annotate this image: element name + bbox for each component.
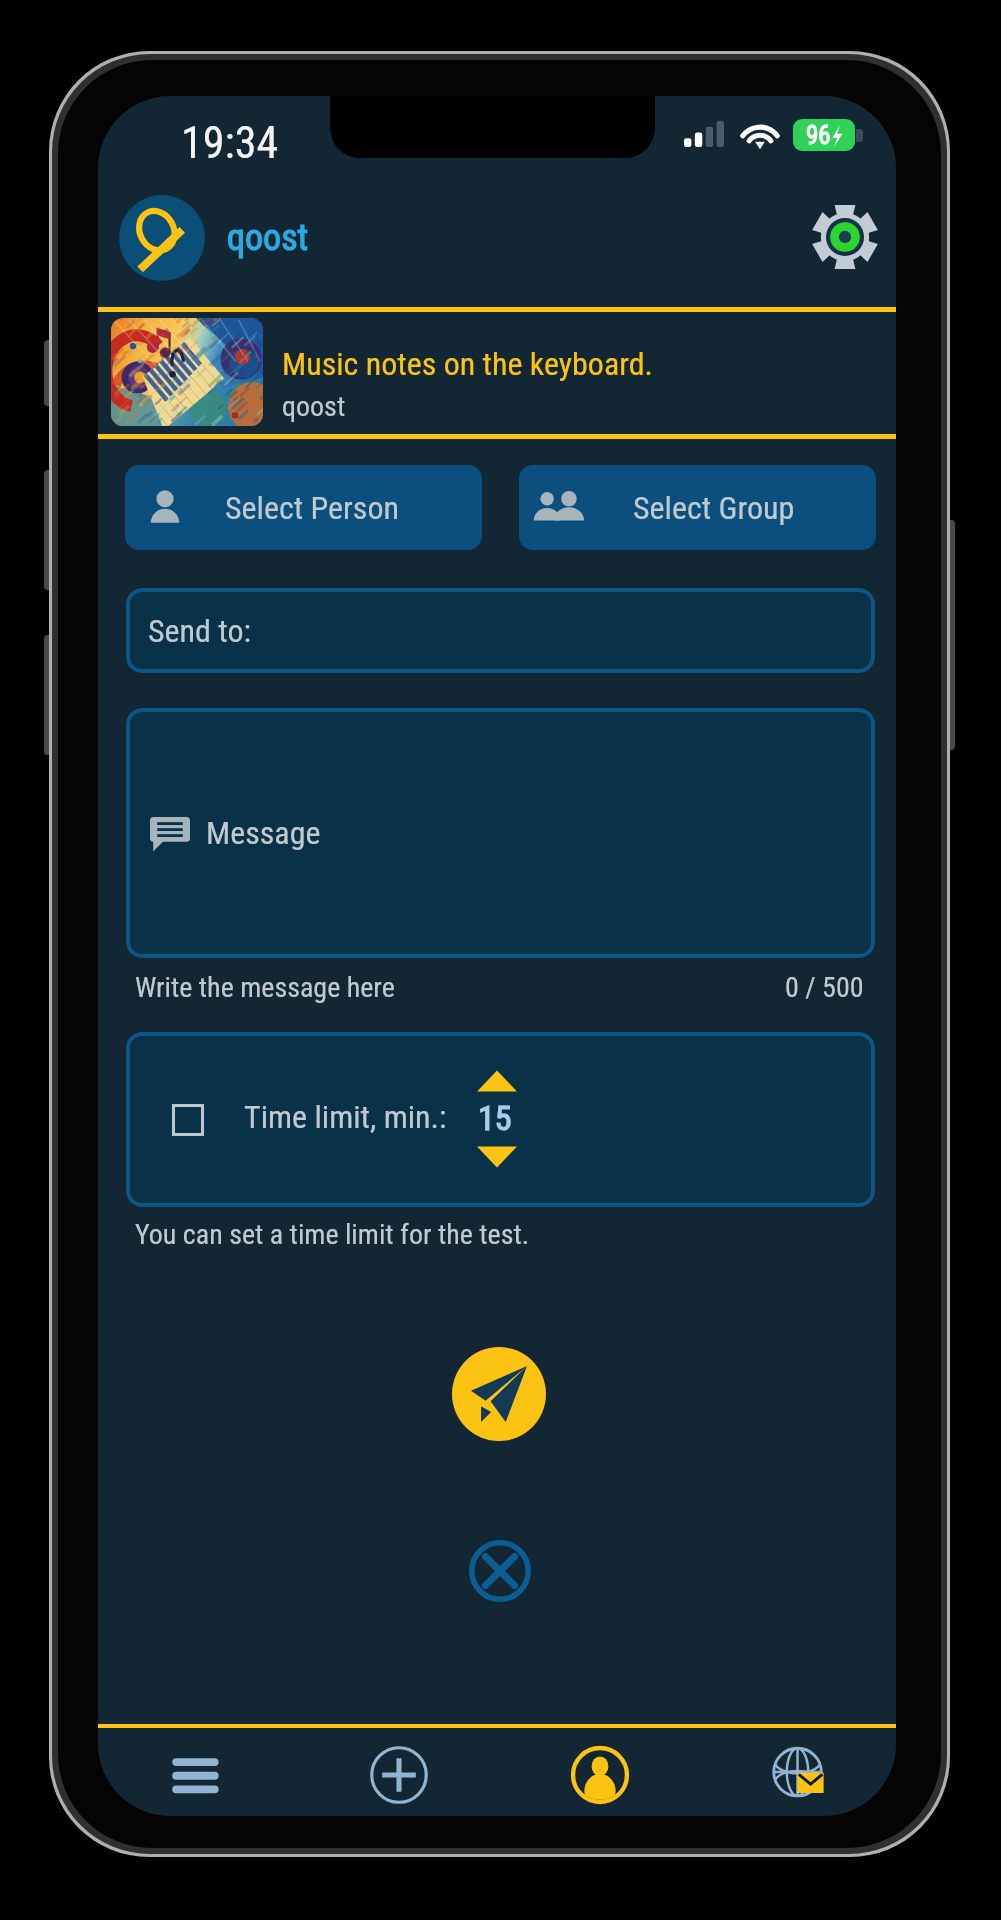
staticText: Write the message here	[135, 971, 395, 1004]
button[interactable]: Menu	[151, 1734, 241, 1816]
button[interactable]: Send to:	[126, 588, 875, 673]
staticText: 0 / 500	[785, 971, 864, 1004]
button[interactable]: Add	[354, 1734, 444, 1816]
staticText: qoost	[282, 390, 346, 423]
staticText: Message	[206, 814, 321, 852]
staticText: Select Group	[633, 489, 795, 527]
button[interactable]: Select Group	[519, 465, 876, 550]
staticText: 96	[806, 121, 831, 150]
button[interactable]: Message	[126, 708, 875, 958]
staticText: You can set a time limit for the test.	[135, 1218, 530, 1251]
button[interactable]: Web mail	[756, 1734, 846, 1816]
staticText: Select Person	[225, 489, 399, 527]
button[interactable]: Decrease	[477, 1144, 517, 1170]
staticText: Music notes on the keyboard.	[282, 345, 654, 383]
button[interactable]: Settings	[807, 199, 883, 275]
button[interactable]: Music notes on the keyboard.	[98, 312, 896, 433]
staticText: Time limit, min.:	[244, 1098, 447, 1136]
button[interactable]: Send	[452, 1347, 546, 1441]
staticText: Send to:	[148, 612, 251, 650]
staticText: qoost	[227, 217, 309, 259]
button[interactable]: Profile	[555, 1734, 645, 1816]
button[interactable]: Select Person	[125, 465, 482, 550]
button[interactable]: Enable time limit	[172, 1104, 204, 1136]
button[interactable]: Cancel	[469, 1540, 531, 1602]
button[interactable]: qoost	[119, 195, 309, 281]
staticText: 19:34	[181, 117, 279, 169]
button[interactable]: Increase	[477, 1068, 517, 1094]
staticText: 15	[478, 1098, 512, 1138]
